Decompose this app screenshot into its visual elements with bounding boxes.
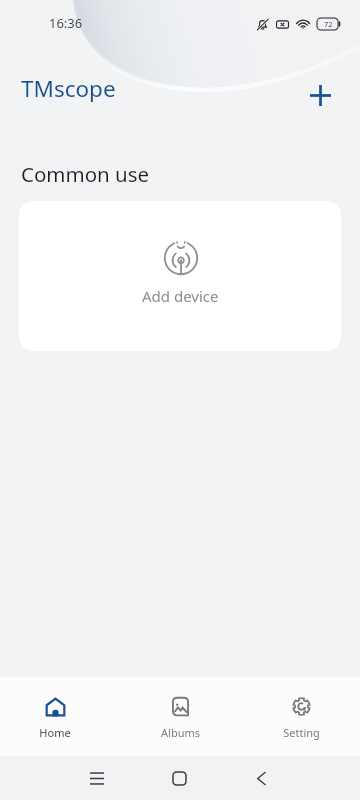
button[interactable]: Add device (298, 73, 342, 117)
button[interactable]: Recent apps (76, 758, 117, 799)
staticText: Home (39, 725, 71, 740)
button[interactable]: Albums (120, 677, 240, 756)
button[interactable]: Home (0, 677, 120, 756)
button[interactable]: Add device (19, 201, 341, 351)
button[interactable]: Back (241, 758, 282, 799)
staticText: Add device (142, 286, 219, 306)
button[interactable]: Setting (240, 677, 360, 756)
button[interactable]: Home (159, 758, 200, 799)
staticText: 72 (324, 19, 333, 29)
staticText: 16:36 (49, 14, 83, 32)
staticText: TMscope (21, 73, 116, 104)
staticText: Setting (283, 725, 320, 740)
staticText: Common use (21, 160, 150, 188)
staticText: Albums (161, 725, 200, 740)
